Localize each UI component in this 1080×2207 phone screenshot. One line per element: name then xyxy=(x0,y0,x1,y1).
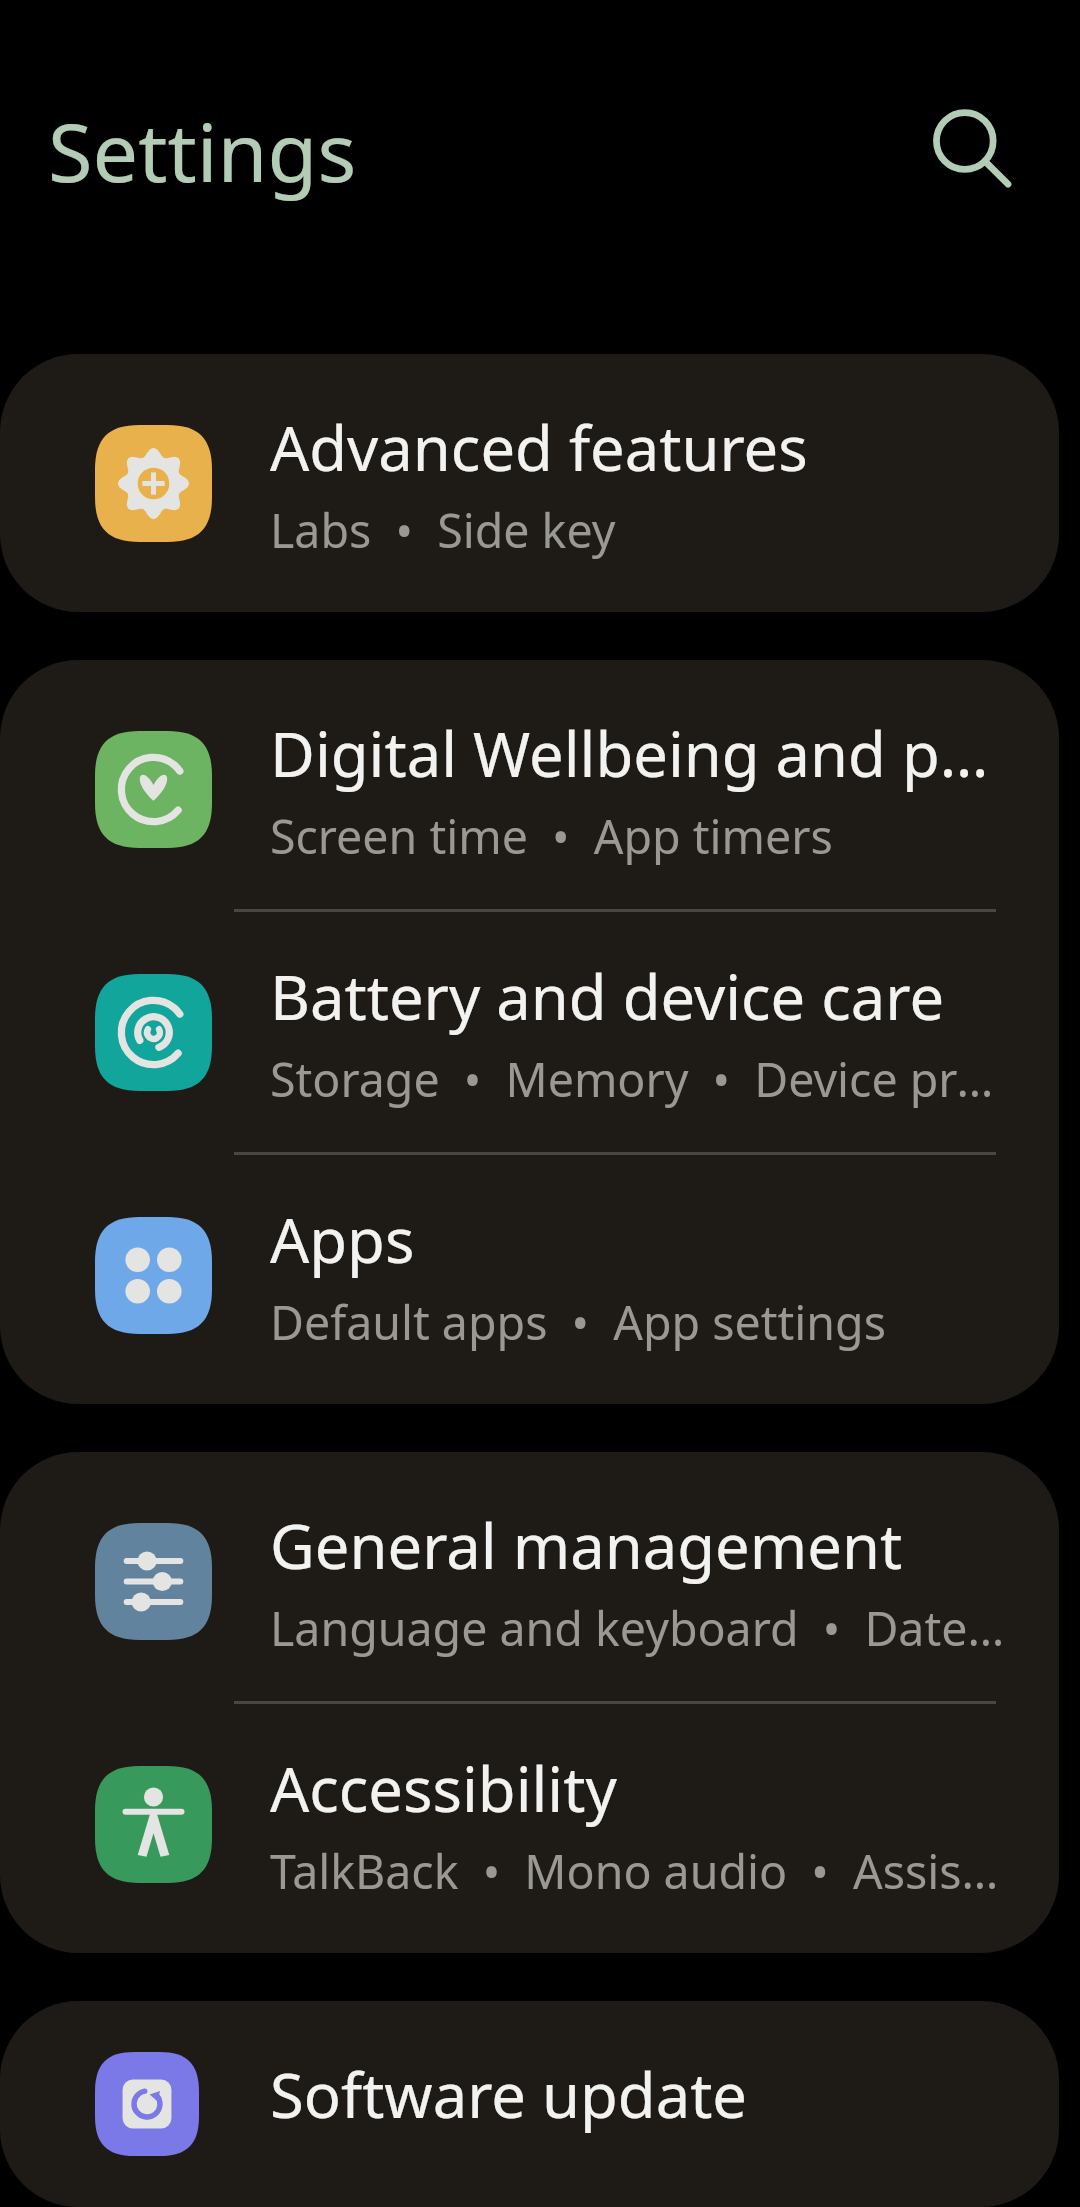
button[interactable]: Digital Wellbeing and parental controls xyxy=(0,669,1059,909)
staticText: Screen time • App timers xyxy=(270,804,833,867)
button[interactable]: General management xyxy=(0,1461,1059,1701)
button[interactable]: Search settings xyxy=(864,42,1080,258)
staticText: TalkBack • Mono audio • Assistant menu xyxy=(270,1839,1005,1902)
button[interactable]: Software update xyxy=(0,2010,1059,2198)
staticText: Storage • Memory • Device protection xyxy=(270,1047,1005,1110)
staticText: Settings xyxy=(48,95,357,205)
button[interactable]: Apps xyxy=(0,1155,1059,1395)
staticText: General management xyxy=(270,1503,903,1587)
staticText: Labs • Side key xyxy=(270,498,616,561)
staticText: Language and keyboard • Date and time xyxy=(270,1596,1005,1659)
button[interactable]: Accessibility xyxy=(0,1704,1059,1944)
staticText: Default apps • App settings xyxy=(270,1290,886,1353)
staticText: Software update xyxy=(270,2052,748,2136)
staticText: Apps xyxy=(270,1197,415,1281)
staticText: Advanced features xyxy=(270,405,808,489)
button[interactable]: Advanced features xyxy=(0,363,1059,603)
staticText: Digital Wellbeing and parental controls xyxy=(270,711,1005,795)
staticText: Battery and device care xyxy=(270,954,945,1038)
button[interactable]: Battery and device care xyxy=(0,912,1059,1152)
staticText: Accessibility xyxy=(270,1746,617,1830)
